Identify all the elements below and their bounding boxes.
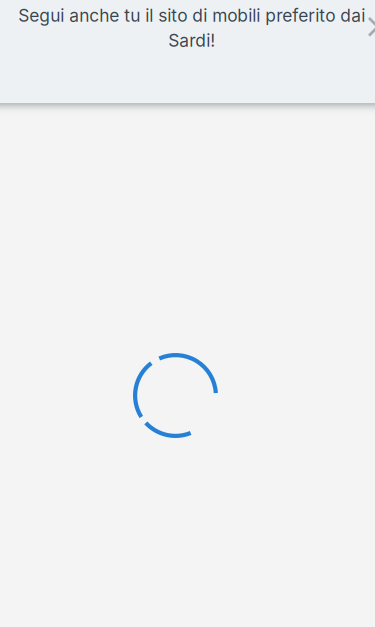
staticText: Segui anche tu il sito di mobili preferi… — [18, 5, 365, 51]
button[interactable]: Segui anche tu il sito di mobili preferi… — [0, 0, 375, 103]
button[interactable]: Apri il sito — [369, 18, 375, 36]
